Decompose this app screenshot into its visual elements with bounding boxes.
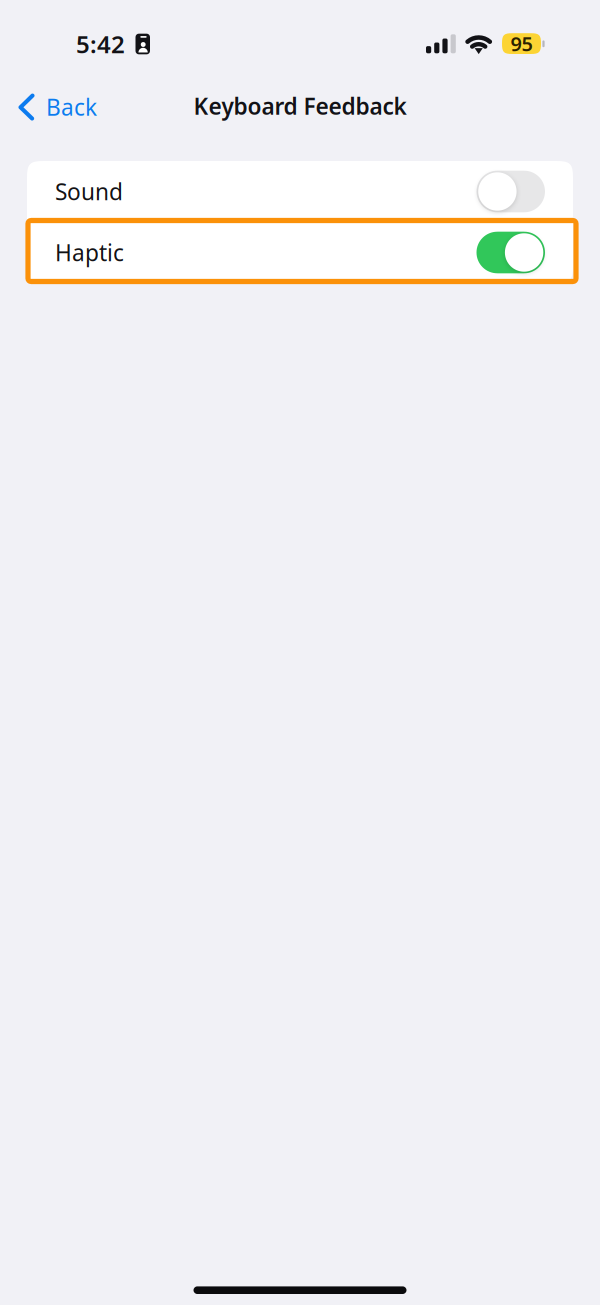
staticText: Keyboard Feedback	[193, 91, 406, 121]
staticText: 5:42	[76, 28, 125, 60]
button[interactable]: Haptic	[27, 222, 573, 283]
staticText: Haptic	[55, 237, 124, 267]
staticText: 95	[510, 30, 532, 57]
staticText: Sound	[55, 176, 123, 206]
button[interactable]: Sound	[27, 161, 573, 222]
staticText: Back	[46, 92, 97, 122]
button[interactable]: Back	[0, 82, 111, 132]
